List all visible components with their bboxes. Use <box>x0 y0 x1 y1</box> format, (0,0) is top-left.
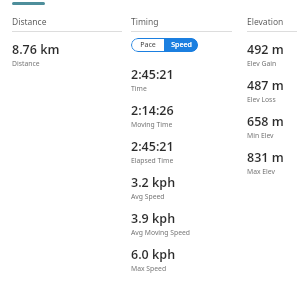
staticText: Elev Loss <box>247 95 276 104</box>
staticText: Timing <box>131 16 159 28</box>
button[interactable]: Speed <box>164 38 198 52</box>
staticText: 658 m <box>247 113 284 130</box>
button[interactable] <box>12 2 45 5</box>
staticText: Time <box>131 84 147 93</box>
staticText: Speed <box>171 40 192 50</box>
staticText: Max Speed <box>131 264 167 273</box>
staticText: 492 m <box>247 41 284 58</box>
staticText: Max Elev <box>247 167 276 176</box>
staticText: 6.0 kph <box>131 246 176 263</box>
staticText: Moving Time <box>131 120 173 129</box>
staticText: Min Elev <box>247 131 274 140</box>
staticText: Avg Speed <box>131 192 165 201</box>
staticText: 831 m <box>247 149 284 166</box>
staticText: Elev Gain <box>247 59 277 68</box>
staticText: Distance <box>12 16 47 28</box>
button[interactable]: Pace <box>131 38 164 52</box>
staticText: Elevation <box>247 16 284 28</box>
staticText: 8.76 km <box>12 41 60 58</box>
staticText: 2:14:26 <box>131 102 174 119</box>
staticText: Elapsed Time <box>131 156 174 165</box>
staticText: Pace <box>140 40 156 50</box>
staticText: 487 m <box>247 77 284 94</box>
staticText: 3.2 kph <box>131 174 176 191</box>
staticText: 2:45:21 <box>131 66 174 83</box>
staticText: 2:45:21 <box>131 138 174 155</box>
staticText: Avg Moving Speed <box>131 228 190 237</box>
staticText: Distance <box>12 59 40 68</box>
staticText: 3.9 kph <box>131 210 176 227</box>
